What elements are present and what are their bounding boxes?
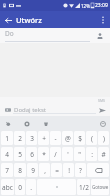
staticText: 12% (81, 3, 90, 9)
button[interactable]: = (51, 163, 62, 177)
staticText: 7 (5, 166, 9, 175)
staticText: 2 (18, 134, 22, 143)
button[interactable]: * (38, 147, 49, 161)
button[interactable]: 3 (26, 131, 37, 145)
staticText: @ (65, 134, 71, 143)
button[interactable]: # (98, 147, 109, 161)
button[interactable]: Motyw (41, 119, 50, 128)
staticText: , (44, 166, 46, 175)
staticText: SMS (98, 98, 106, 103)
button[interactable]: 2 (14, 131, 25, 145)
button[interactable]: ) (98, 131, 109, 145)
button[interactable]: ' (62, 147, 73, 161)
button[interactable]: - (50, 131, 61, 145)
staticText: 8 (18, 166, 22, 175)
button[interactable]: 0 (15, 179, 25, 195)
button[interactable]: " (74, 147, 85, 161)
staticText: 1 (5, 134, 9, 143)
button[interactable]: $ (74, 131, 85, 145)
staticText: : (91, 150, 93, 159)
staticText: 3 (30, 134, 34, 143)
staticText: / (54, 150, 57, 159)
staticText: 4 (5, 150, 9, 159)
staticText: " (78, 150, 81, 159)
staticText: $ (78, 134, 82, 143)
staticText: # (101, 150, 106, 159)
staticText: ! (68, 166, 70, 175)
staticText: . (30, 183, 32, 192)
button[interactable]: Emotikony (98, 119, 107, 128)
staticText: 1/2 (79, 183, 89, 192)
staticText: ( (91, 134, 93, 143)
button[interactable]: Wybierz kontakt (94, 30, 106, 42)
button[interactable]: 1/2 (77, 179, 90, 195)
staticText: ? (79, 166, 82, 175)
staticText: 6 (30, 150, 34, 159)
button[interactable]: Gotowe (91, 179, 109, 195)
button[interactable]: ( (86, 131, 97, 145)
button[interactable]: : (86, 147, 97, 161)
button[interactable]: 8 (14, 163, 26, 177)
staticText: * (42, 150, 46, 159)
staticText: 23:09 (95, 2, 108, 9)
staticText: 5 (18, 150, 22, 159)
staticText: 9 (31, 166, 35, 175)
button[interactable]: 6 (26, 147, 37, 161)
button[interactable]: 1 (1, 131, 13, 145)
staticText: = (55, 166, 59, 175)
staticText: Gotowe (92, 184, 109, 190)
staticText: ' (67, 150, 69, 159)
button[interactable]: Więcej opcji (97, 14, 108, 25)
button[interactable]: Dodaj załącznik (2, 104, 13, 115)
button[interactable]: Spacja (37, 179, 76, 195)
button[interactable]: Wyślij (96, 104, 108, 116)
button[interactable]: Backspace (87, 163, 109, 177)
button[interactable]: abc (1, 179, 14, 195)
staticText: 0 (18, 183, 22, 192)
staticText: Utwórz (16, 15, 42, 25)
staticText: abc (2, 183, 13, 192)
staticText: Do (5, 29, 14, 38)
button[interactable]: 9 (27, 163, 38, 177)
button[interactable]: ! (63, 163, 74, 177)
staticText: - (54, 134, 57, 143)
button[interactable]: , (39, 163, 50, 177)
button[interactable]: / (50, 147, 61, 161)
button[interactable]: Język (22, 119, 31, 128)
staticText: Dodaj tekst (14, 106, 46, 114)
button[interactable]: ? (75, 163, 86, 177)
button[interactable]: 4 (1, 147, 13, 161)
button[interactable]: + (38, 131, 49, 145)
button[interactable]: 7 (1, 163, 13, 177)
button[interactable]: . (26, 179, 36, 195)
staticText: ) (103, 134, 105, 143)
staticText: + (42, 134, 46, 143)
button[interactable]: Wstecz (3, 15, 13, 25)
button[interactable]: Gesty (3, 119, 12, 128)
button[interactable]: 5 (14, 147, 25, 161)
button[interactable]: @ (62, 131, 73, 145)
